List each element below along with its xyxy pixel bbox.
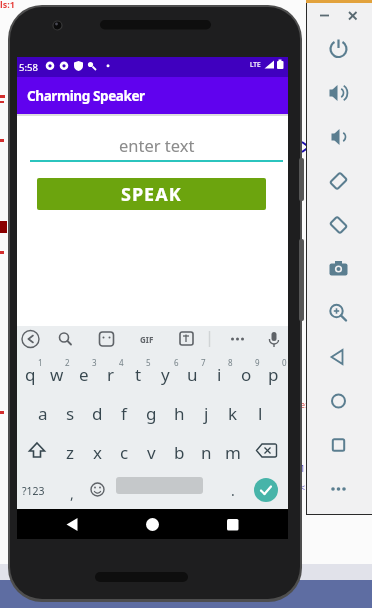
staticText: y <box>161 363 170 386</box>
button[interactable] <box>254 478 278 502</box>
button[interactable] <box>140 511 165 537</box>
staticText: 6 <box>174 357 179 368</box>
staticText: , <box>70 484 74 503</box>
staticText: k <box>228 402 238 425</box>
button[interactable] <box>324 167 353 195</box>
button[interactable] <box>324 35 353 63</box>
staticText: 4 <box>119 357 124 368</box>
button[interactable]: c <box>111 439 137 465</box>
staticText: 8 <box>228 357 233 368</box>
button[interactable] <box>324 387 353 415</box>
button[interactable]: w <box>44 361 70 387</box>
staticText: w <box>50 363 64 386</box>
staticText: x <box>93 441 102 464</box>
button[interactable]: i <box>206 361 232 387</box>
button[interactable]: g <box>138 400 164 426</box>
staticText: 5 <box>146 357 151 368</box>
staticText: enter text <box>119 134 195 156</box>
staticText: 0 <box>282 357 287 368</box>
staticText: . <box>231 481 235 500</box>
staticText: 1 <box>38 357 43 368</box>
button[interactable]: t <box>125 361 151 387</box>
staticText: s <box>66 402 75 425</box>
button[interactable]: v <box>138 439 164 465</box>
button[interactable]: b <box>166 439 192 465</box>
button[interactable]: y <box>152 361 178 387</box>
button[interactable]: p <box>260 361 286 387</box>
button[interactable] <box>324 299 353 327</box>
staticText: a <box>38 402 48 425</box>
button[interactable] <box>60 511 85 537</box>
staticText: g <box>146 402 157 425</box>
button[interactable]: m <box>220 439 246 465</box>
button[interactable] <box>324 475 353 503</box>
button[interactable]: j <box>193 400 219 426</box>
staticText: ls:1 <box>0 0 15 10</box>
staticText: o <box>241 363 252 386</box>
button[interactable]: e <box>71 361 97 387</box>
button[interactable]: q <box>17 361 43 387</box>
staticText: f <box>121 402 127 425</box>
staticText: j <box>204 402 209 425</box>
staticText: 7 <box>201 357 206 368</box>
button[interactable]: s <box>57 400 83 426</box>
staticText: c <box>120 441 129 464</box>
button[interactable]: SPEAK <box>37 178 266 210</box>
button[interactable]: o <box>233 361 259 387</box>
staticText: 3 <box>92 357 97 368</box>
button[interactable]: r <box>98 361 124 387</box>
staticText: e <box>79 363 89 386</box>
button[interactable]: x <box>84 439 110 465</box>
staticText: Charming Speaker <box>27 87 145 105</box>
staticText: SPEAK <box>121 182 182 207</box>
button[interactable] <box>324 79 353 107</box>
button[interactable]: f <box>111 400 137 426</box>
button[interactable] <box>324 123 353 151</box>
staticText: q <box>25 363 36 386</box>
staticText: u <box>187 363 198 386</box>
staticText: e: <box>300 398 308 410</box>
staticText: l <box>258 402 263 425</box>
button[interactable]: n <box>193 439 219 465</box>
staticText: m <box>225 441 241 464</box>
button[interactable]: h <box>166 400 192 426</box>
staticText: t <box>135 363 142 386</box>
button[interactable] <box>324 431 353 459</box>
button[interactable]: u <box>179 361 205 387</box>
button[interactable]: z <box>57 439 83 465</box>
staticText: h <box>174 402 185 425</box>
button[interactable] <box>220 511 245 537</box>
staticText: p <box>268 363 279 386</box>
staticText: d <box>92 402 103 425</box>
button[interactable]: k <box>220 400 246 426</box>
staticText: n <box>201 441 212 464</box>
staticText: ?123 <box>22 484 45 498</box>
button[interactable]: d <box>84 400 110 426</box>
staticText: 2 <box>65 357 70 368</box>
staticText: LTE <box>250 60 261 69</box>
staticText: < <box>300 481 306 493</box>
button[interactable]: enter text <box>30 129 283 161</box>
button[interactable]: a <box>30 400 56 426</box>
staticText: GIF <box>140 334 154 345</box>
button[interactable]: l <box>247 400 273 426</box>
staticText: 1 <box>300 462 306 474</box>
button[interactable] <box>324 211 353 239</box>
staticText: r <box>107 363 115 386</box>
staticText: v <box>147 441 156 464</box>
button[interactable] <box>324 255 353 283</box>
staticText: i <box>217 363 222 386</box>
staticText: 5:58 <box>19 61 38 74</box>
staticText: 9 <box>255 357 260 368</box>
button[interactable] <box>324 343 353 371</box>
staticText: b <box>174 441 185 464</box>
staticText: z <box>66 441 74 464</box>
